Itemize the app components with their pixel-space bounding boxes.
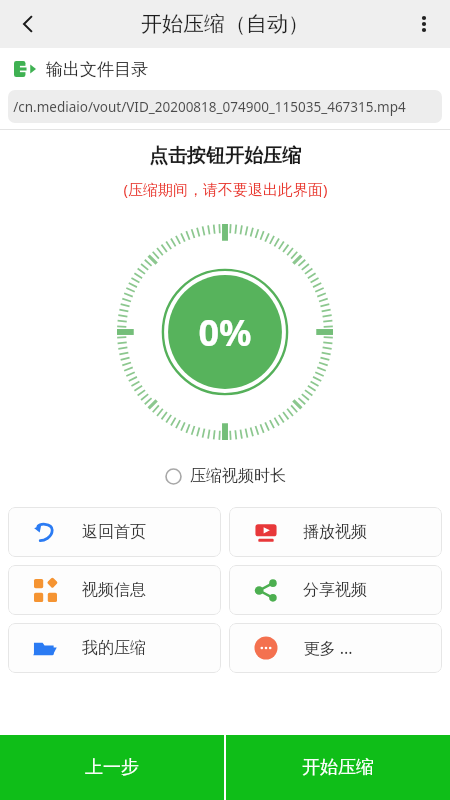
button[interactable]: 输出文件目录 bbox=[0, 48, 450, 90]
staticText: (压缩期间，请不要退出此界面) bbox=[123, 179, 328, 199]
staticText: /cn.mediaio/vout/VID_20200818_074900_115… bbox=[13, 98, 406, 116]
button[interactable]: More options bbox=[398, 0, 450, 48]
staticText: 我的压缩 bbox=[82, 638, 146, 658]
staticText: 输出文件目录 bbox=[46, 59, 148, 80]
staticText: 开始压缩 bbox=[302, 756, 374, 779]
button[interactable]: /cn.mediaio/vout/VID_20200818_074900_115… bbox=[8, 90, 442, 123]
button[interactable]: 分享视频 bbox=[229, 565, 442, 615]
staticText: 播放视频 bbox=[303, 522, 367, 542]
button[interactable]: 上一步 bbox=[0, 735, 224, 800]
staticText: 更多 ... bbox=[303, 637, 353, 659]
button[interactable]: 开始压缩 bbox=[226, 735, 450, 800]
button[interactable]: 压缩视频时长 bbox=[165, 466, 286, 486]
button[interactable]: Back bbox=[0, 0, 56, 48]
button[interactable]: 播放视频 bbox=[229, 507, 442, 557]
staticText: 分享视频 bbox=[303, 580, 367, 600]
button[interactable]: 更多 ... bbox=[229, 623, 442, 673]
staticText: 开始压缩（自动） bbox=[141, 11, 309, 37]
staticText: 上一步 bbox=[85, 756, 139, 779]
staticText: 返回首页 bbox=[82, 522, 146, 542]
staticText: 0% bbox=[198, 308, 252, 357]
button[interactable]: 我的压缩 bbox=[8, 623, 221, 673]
staticText: 点击按钮开始压缩 bbox=[149, 144, 301, 168]
staticText: 压缩视频时长 bbox=[190, 466, 286, 486]
button[interactable]: 视频信息 bbox=[8, 565, 221, 615]
button[interactable]: 返回首页 bbox=[8, 507, 221, 557]
staticText: 视频信息 bbox=[82, 580, 146, 600]
